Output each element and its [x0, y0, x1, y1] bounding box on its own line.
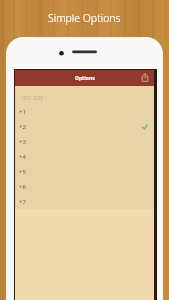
staticText: Simple Options	[48, 11, 121, 25]
button[interactable]: +1	[15, 104, 154, 119]
staticText: TEXT SIZE	[21, 95, 44, 101]
button[interactable]: Share	[142, 73, 148, 83]
staticText: +7	[19, 198, 26, 206]
staticText: Options	[75, 75, 95, 82]
button[interactable]: Options	[15, 70, 154, 86]
staticText: +6	[19, 183, 26, 191]
button[interactable]: +6	[15, 179, 154, 194]
staticText: +1	[19, 108, 26, 116]
staticText: +3	[19, 138, 26, 146]
button[interactable]: +2	[15, 119, 154, 134]
staticText: +2	[19, 123, 26, 131]
staticText: +5	[19, 168, 26, 176]
button[interactable]: +4	[15, 149, 154, 164]
button[interactable]: +3	[15, 134, 154, 149]
staticText: +4	[19, 153, 26, 161]
button[interactable]: +5	[15, 164, 154, 179]
button[interactable]: +7	[15, 194, 154, 209]
